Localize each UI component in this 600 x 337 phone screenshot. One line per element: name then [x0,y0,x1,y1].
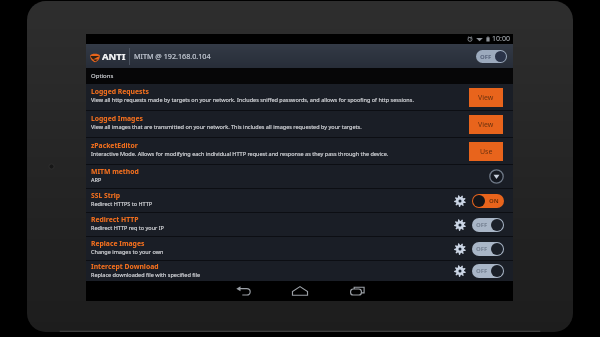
button[interactable]: Settings [453,242,467,256]
staticText: View [478,120,494,130]
button[interactable]: SSL Strip [86,189,513,212]
staticText: SSL Strip [91,191,121,200]
button[interactable]: zPacketEditor [86,138,513,164]
button[interactable]: Use [469,142,503,161]
staticText: Redirect HTTP [91,215,139,224]
button[interactable]: ANTI [86,50,129,63]
staticText: Interactive Mode. Allows for modifying e… [91,150,389,157]
button[interactable]: Settings [453,264,467,278]
staticText: ARP [91,176,102,183]
staticText: zPacketEditor [91,141,138,150]
button[interactable]: Back [221,281,265,301]
staticText: Change images to your own [91,248,164,255]
staticText: OFF [476,267,488,275]
staticText: MITM method [91,167,139,176]
button[interactable]: Turn off [472,194,504,208]
staticText: Replace downloaded file with specified f… [91,271,201,278]
staticText: Options [91,72,114,80]
button[interactable]: Home [278,281,322,301]
button[interactable]: Choose MITM method [489,169,504,184]
button[interactable]: Redirect HTTP [86,213,513,236]
staticText: Logged Requests [91,87,149,96]
staticText: OFF [480,53,492,61]
button[interactable]: Settings [453,194,467,208]
button[interactable]: Turn on [472,264,504,278]
staticText: Intercept Download [91,262,159,271]
button[interactable]: Logged Requests [86,84,513,110]
button[interactable]: Master toggle [476,50,507,63]
staticText: 10:00 [492,34,510,44]
button[interactable]: MITM method [86,165,513,188]
staticText: OFF [476,221,488,229]
staticText: OFF [476,245,488,253]
staticText: Logged Images [91,114,143,123]
staticText: ON [489,197,499,205]
staticText: Replace Images [91,239,145,248]
staticText: View all images that are transmitted on … [91,123,362,130]
button[interactable]: Turn on [472,242,504,256]
staticText: View [478,93,494,103]
staticText: Redirect HTTP req to your IP [91,224,164,231]
button[interactable]: Replace Images [86,237,513,260]
button[interactable]: Intercept Download [86,261,513,281]
button[interactable]: Logged Images [86,111,513,137]
staticText: MITM @ 192.168.0.104 [134,51,211,61]
button[interactable]: Turn on [472,218,504,232]
button[interactable]: Recent apps [335,281,379,301]
staticText: Redirect HTTPS to HTTP [91,200,153,207]
staticText: ANTI [102,50,126,63]
button[interactable]: View [469,88,503,107]
staticText: Use [480,147,493,157]
button[interactable]: Settings [453,218,467,232]
staticText: View all http requests made by targets o… [91,96,414,103]
button[interactable]: View [469,115,503,134]
